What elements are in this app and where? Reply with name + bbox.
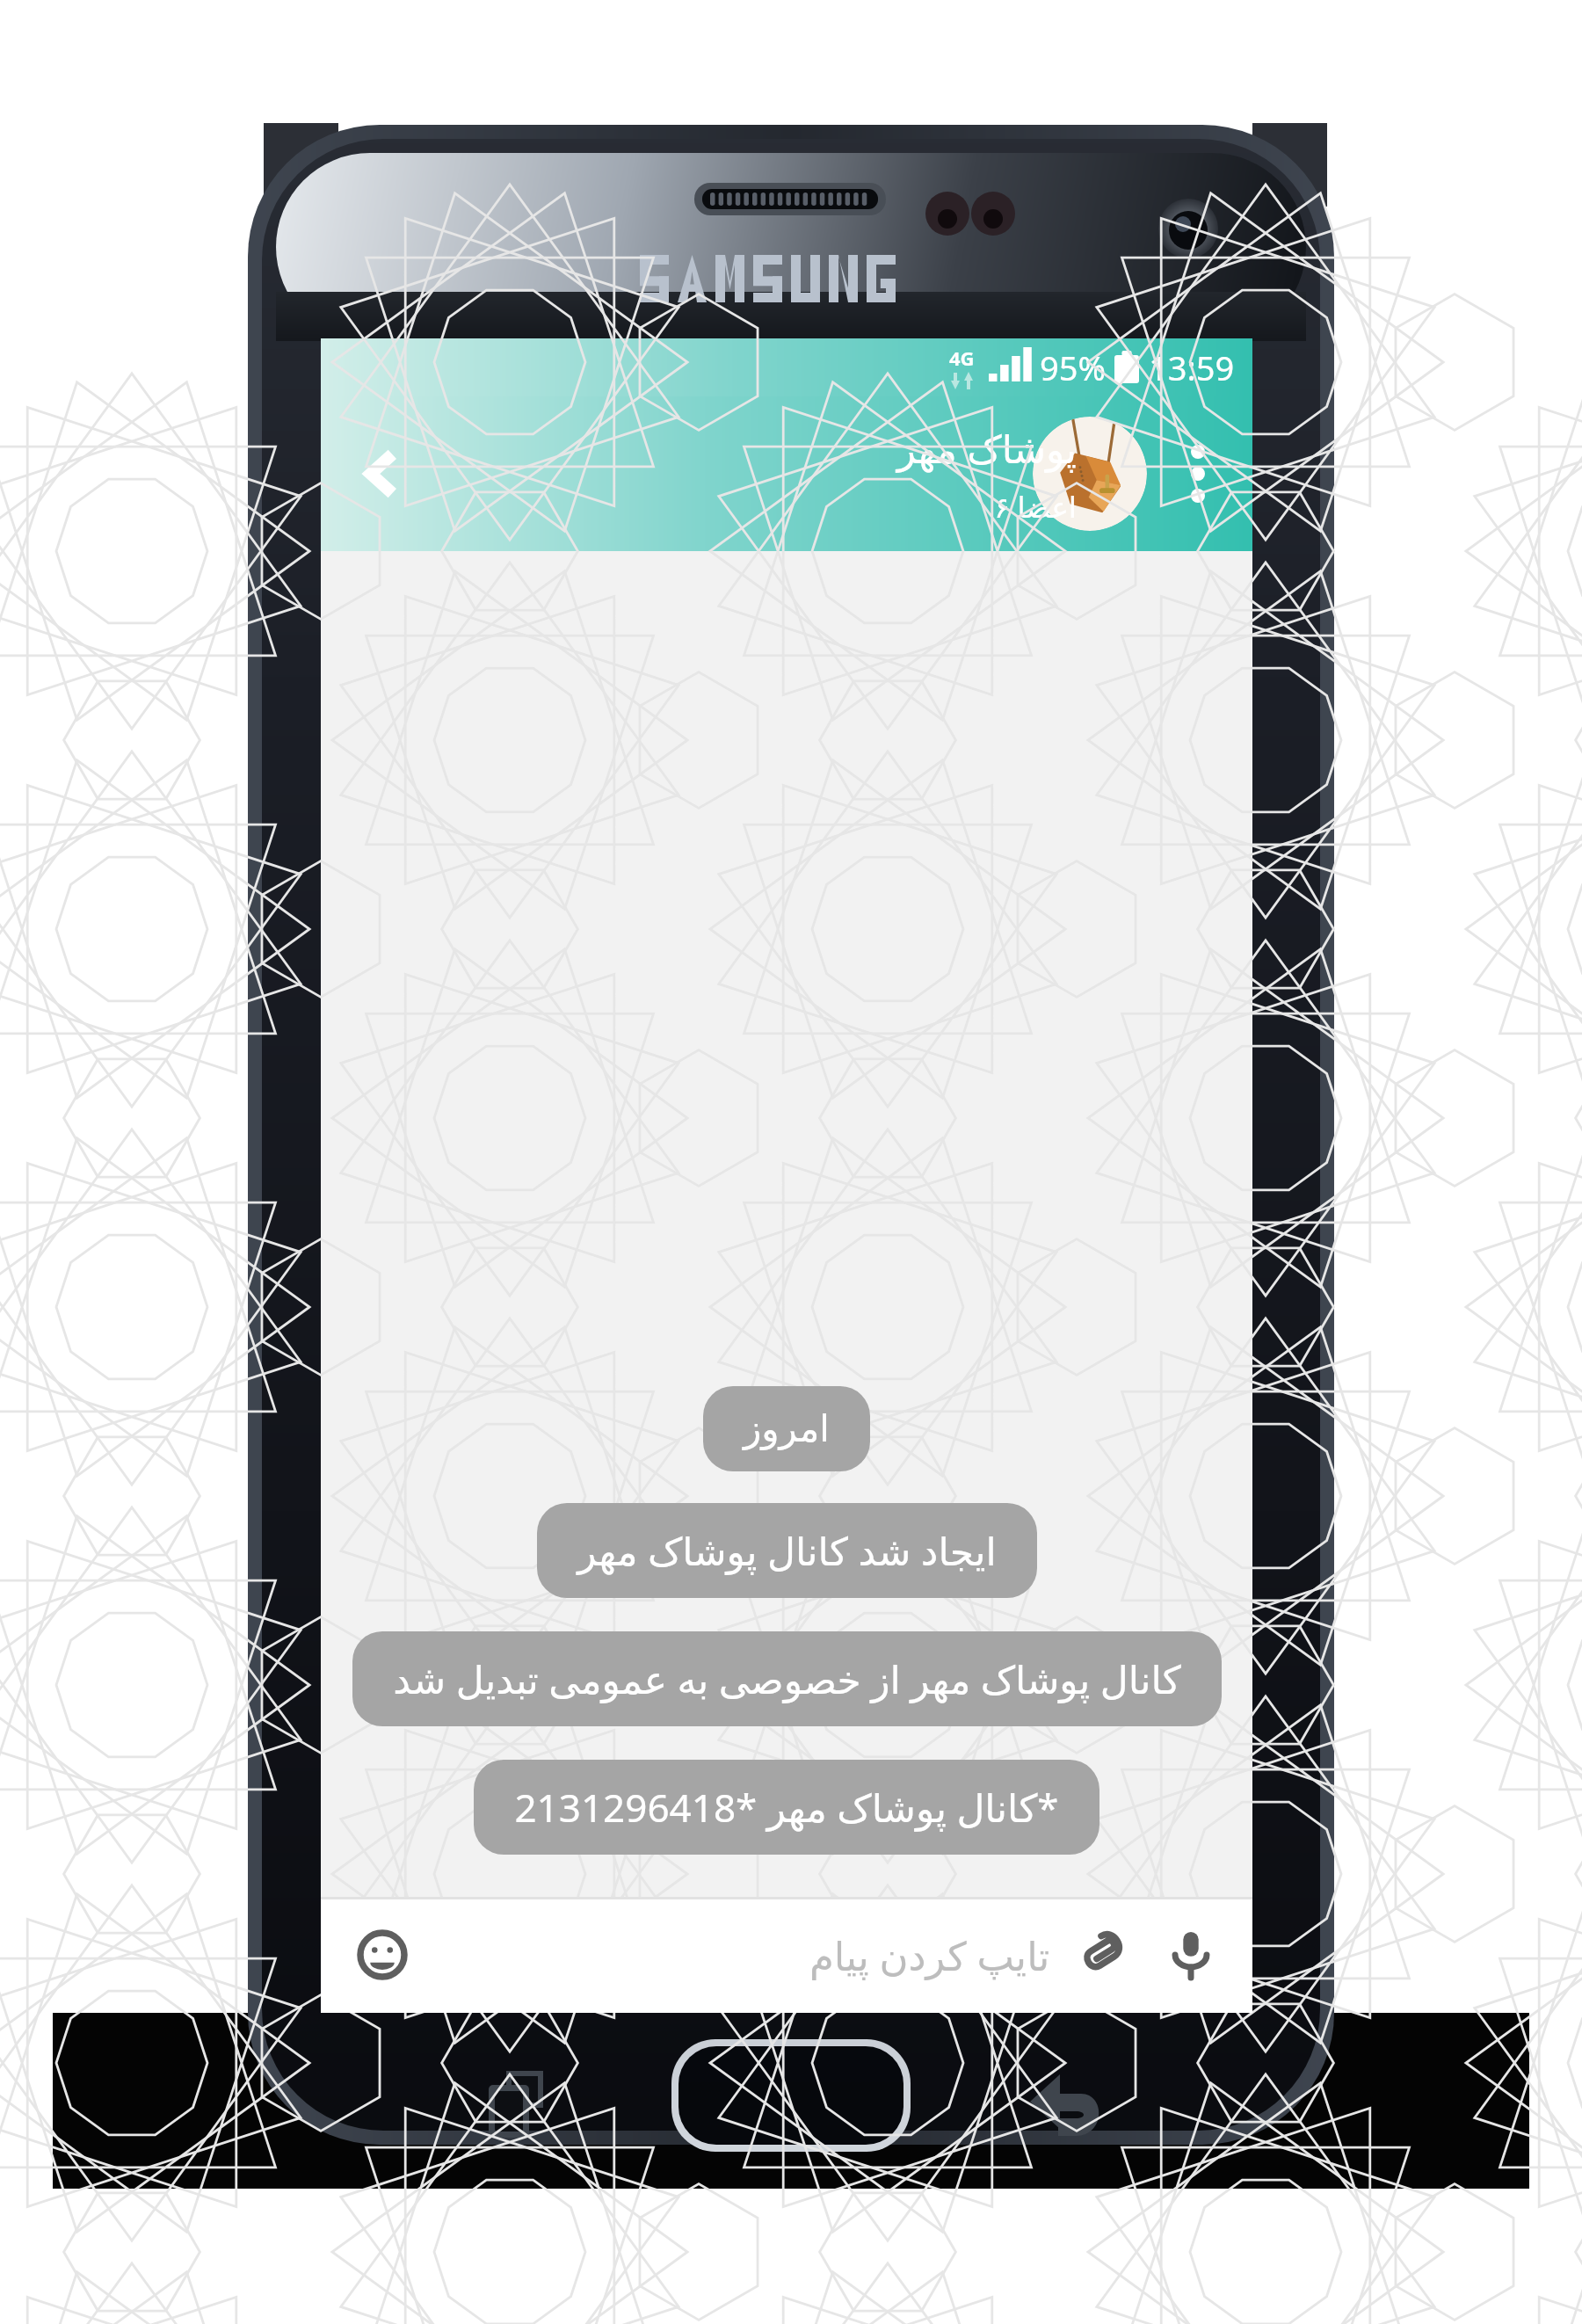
button[interactable]: More options (1154, 430, 1242, 518)
staticText: 95% (1040, 345, 1107, 390)
staticText: ایجاد شد کانال پوشاک مهر (577, 1524, 997, 1577)
button[interactable]: پوشاک مهر (896, 422, 1077, 527)
button[interactable]: Back (335, 430, 423, 518)
button[interactable]: Attach (1059, 1911, 1147, 1999)
button[interactable]: Voice message (1147, 1911, 1235, 1999)
staticText: تایپ کردن پیام (809, 1928, 1050, 1982)
button[interactable]: ایجاد شد کانال پوشاک مهر (537, 1503, 1037, 1598)
staticText: پوشاک مهر (896, 422, 1077, 475)
staticText: کانال پوشاک مهر *2131296418* (514, 1781, 1059, 1834)
button[interactable]: Channel avatar (1033, 417, 1147, 531)
staticText: 4G (949, 345, 975, 371)
button[interactable]: امروز (703, 1386, 870, 1471)
button[interactable]: کانال پوشاک مهر *2131296418* (474, 1760, 1099, 1855)
staticText: امروز (744, 1407, 830, 1450)
button[interactable]: کانال پوشاک مهر از خصوصی به عمومی تبدیل … (352, 1631, 1222, 1726)
staticText: ۶ اعضا (994, 487, 1077, 527)
staticText: کانال پوشاک مهر از خصوصی به عمومی تبدیل … (393, 1652, 1181, 1705)
button[interactable]: تایپ کردن پیام (426, 1897, 1059, 2013)
button[interactable]: Emoji (338, 1911, 426, 1999)
staticText: 13:59 (1149, 345, 1235, 390)
